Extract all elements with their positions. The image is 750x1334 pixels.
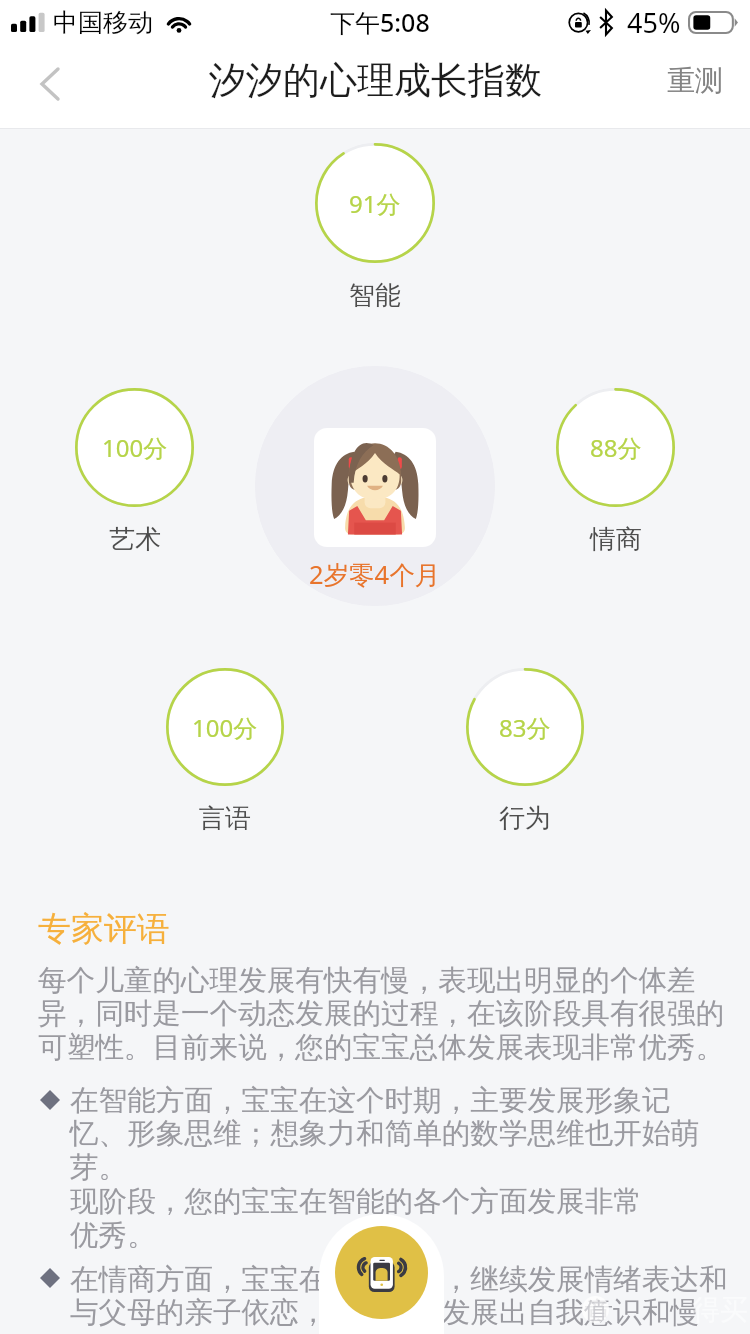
staticText: 100分 [102, 431, 168, 464]
staticText: 重测 [667, 63, 723, 98]
button[interactable]: 91分 [315, 143, 435, 323]
staticText: 2岁零4个月 [309, 557, 441, 592]
staticText: 情商 [590, 523, 642, 556]
staticText: 智能 [349, 279, 401, 312]
staticText: 45% [627, 4, 681, 41]
button[interactable]: 重测 [656, 56, 734, 104]
button[interactable]: Back [20, 54, 80, 114]
staticText: 艺术 [109, 523, 161, 556]
staticText: 值 [584, 1296, 608, 1323]
button[interactable]: 100分 [166, 668, 284, 846]
staticText: 言语 [199, 802, 251, 835]
staticText: 值诶稻 [612, 1292, 696, 1327]
staticText: 每个儿童的心理发展有快有慢，表现出明显的个体差 异，同时是一个动态发展的过程，在… [38, 962, 725, 1066]
staticText: 83分 [499, 711, 551, 744]
staticText: 88分 [590, 431, 642, 464]
staticText: 汐汐的心理成长指数 [209, 57, 542, 104]
staticText: 中国移动 [53, 7, 153, 38]
button[interactable]: 88分 [556, 388, 675, 567]
button[interactable]: Baby avatar [314, 428, 436, 547]
button[interactable]: 83分 [466, 668, 584, 846]
staticText: 专家评语 [38, 908, 170, 950]
staticText: 100分 [192, 711, 258, 744]
staticText: 行为 [499, 802, 551, 835]
staticText: 91分 [349, 187, 401, 220]
staticText: 在情商方面，宝宝在这个时期，继续发展情绪表达和 与父母的亲子依恋，同时开始发展出… [70, 1261, 728, 1331]
button[interactable]: Shake to measure [335, 1226, 428, 1319]
staticText: 得买 [692, 1292, 748, 1327]
staticText: 在智能方面，宝宝在这个时期，主要发展形象记 忆、形象思维；想象力和简单的数学思维… [70, 1082, 700, 1254]
staticText: 下午5:08 [330, 5, 430, 39]
button[interactable]: 100分 [75, 388, 194, 567]
